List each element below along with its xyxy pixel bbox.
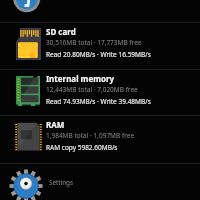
button[interactable]: Settings [0,163,200,200]
staticText: Read 20.80MB/s · Write 16.59MB/s [46,50,151,59]
staticText: RAM copy 5982.60MB/s [46,143,118,152]
staticText: SD card [46,26,76,37]
staticText: Internal memory [46,73,115,84]
staticText: 1,984MB total · 1,097MB free [46,131,135,140]
button[interactable]: RAM [0,115,200,163]
button[interactable]: Benchmark result [0,0,200,22]
staticText: Settings [49,178,73,187]
staticText: Read 74.93MB/s · Write 39.48MB/s [46,97,151,106]
button[interactable]: SD card [0,22,200,69]
staticText: 12,443MB total · 7,020MB free [46,85,138,94]
button[interactable]: Internal memory [0,69,200,115]
staticText: 30,516MB total · 17,773MB free [46,38,142,47]
staticText: RAM [46,119,65,130]
